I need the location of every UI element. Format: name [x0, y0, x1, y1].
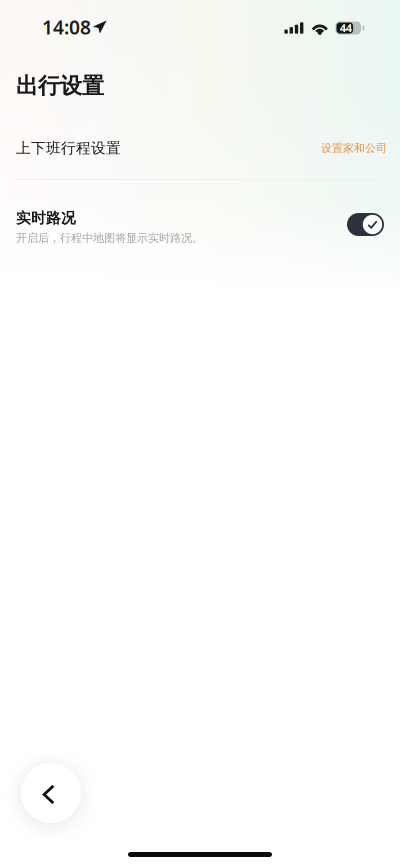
button[interactable]: 上下班行程设置 — [0, 121, 400, 175]
button[interactable]: 实时路况开关 — [347, 213, 384, 236]
staticText: 上下班行程设置 — [16, 139, 121, 157]
staticText: 14:08 — [42, 14, 91, 40]
staticText: 出行设置 — [16, 72, 104, 100]
staticText: 开启后，行程中地图将显示实时路况。 — [16, 231, 203, 245]
staticText: 实时路况 — [16, 209, 76, 227]
staticText: 44 — [340, 20, 352, 36]
staticText: 设置家和公司 — [321, 141, 387, 155]
button[interactable]: Back — [15, 757, 87, 829]
